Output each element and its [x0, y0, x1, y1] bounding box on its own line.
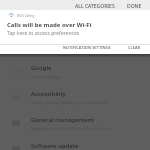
button[interactable]: DONE	[125, 1, 144, 11]
button[interactable]: CLEAR	[126, 43, 143, 52]
staticText: NOTIFICATION SETTINGS	[63, 45, 111, 50]
button[interactable]: Software update	[0, 136, 150, 150]
button[interactable]: General management	[0, 110, 150, 136]
staticText: DONE	[127, 3, 142, 9]
button[interactable]: Google	[0, 58, 150, 84]
staticText: ALL CATEGORIES	[75, 3, 115, 9]
staticText: Accessibility	[31, 90, 66, 98]
staticText: Calls will be made over Wi-Fi	[7, 21, 92, 29]
staticText: Vision, Hearing, Dexterity and interacti…	[31, 100, 109, 105]
staticText: Software update	[31, 142, 79, 150]
staticText: Tap here to access preferences	[7, 30, 80, 37]
button[interactable]: Accessibility	[0, 84, 150, 110]
staticText: Wi-Fi Calling	[17, 14, 35, 18]
other: Wi-Fi Calling	[9, 13, 14, 18]
button[interactable]: ALL CATEGORIES	[73, 1, 117, 11]
staticText: Google settings	[31, 74, 61, 79]
button[interactable]	[0, 10, 150, 44]
staticText: CLEAR	[128, 45, 141, 50]
staticText: Language and input, Date and time, Reset	[31, 126, 111, 131]
staticText: Google	[31, 64, 52, 72]
staticText: General management	[31, 116, 94, 124]
button[interactable]: NOTIFICATION SETTINGS	[61, 43, 113, 52]
